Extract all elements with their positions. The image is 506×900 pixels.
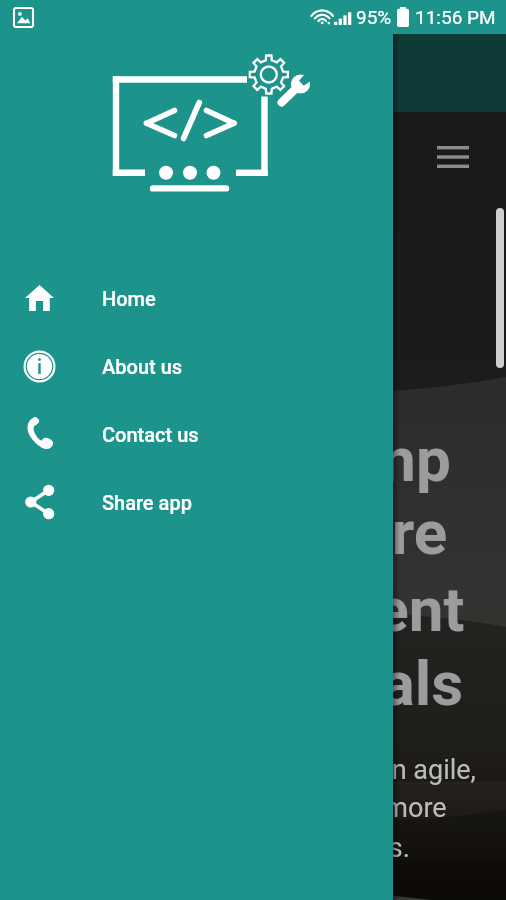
button[interactable]: Contact us	[0, 400, 393, 468]
staticText: deals.	[338, 832, 410, 864]
staticText: do more	[347, 792, 447, 824]
button[interactable]: About us	[0, 332, 393, 400]
staticText: Contact us	[102, 423, 199, 446]
button[interactable]: Home	[0, 264, 393, 332]
staticText: client	[310, 573, 465, 646]
staticText: goals	[311, 647, 464, 720]
staticText: Home	[102, 287, 156, 310]
staticText: 11:56 PM	[415, 6, 496, 28]
button[interactable]: Open navigation drawer	[430, 134, 476, 180]
staticText: 95%	[356, 6, 392, 28]
staticText: more	[303, 496, 448, 569]
staticText: About us	[102, 355, 183, 378]
button[interactable]: Share app	[0, 468, 393, 536]
staticText: Learn agile,	[339, 754, 476, 786]
staticText: Share app	[102, 491, 192, 514]
staticText: Jump	[293, 423, 451, 496]
